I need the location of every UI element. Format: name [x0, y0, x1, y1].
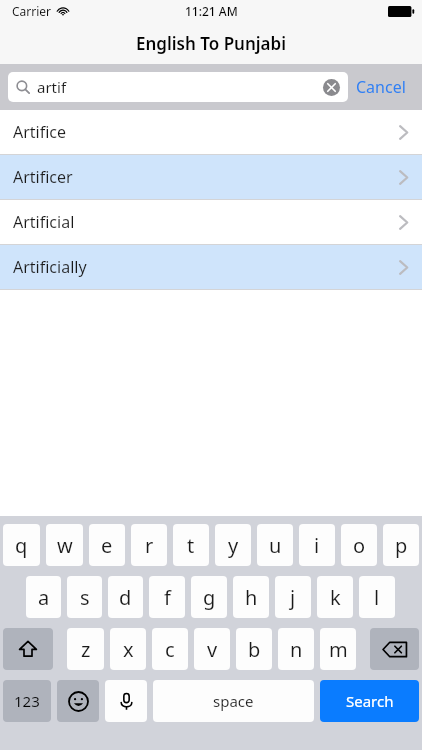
button[interactable]: u	[257, 524, 293, 566]
button[interactable]: Artificial	[0, 200, 422, 244]
staticText: Artificer	[13, 166, 73, 188]
button[interactable]: Search	[320, 680, 419, 722]
staticText: p	[395, 532, 408, 559]
staticText: s	[80, 584, 90, 611]
button[interactable]: 123	[3, 680, 51, 722]
staticText: m	[329, 636, 348, 663]
button[interactable]: Cancel	[348, 72, 414, 102]
button[interactable]: k	[317, 576, 353, 618]
button[interactable]: j	[275, 576, 311, 618]
button[interactable]: n	[278, 628, 314, 670]
button[interactable]: c	[152, 628, 188, 670]
staticText: b	[248, 636, 261, 663]
button[interactable]: m	[320, 628, 356, 670]
staticText: Artificial	[13, 211, 75, 233]
staticText: z	[81, 636, 91, 663]
staticText: e	[101, 532, 113, 559]
button[interactable]: z	[67, 628, 104, 670]
staticText: Search	[346, 691, 394, 711]
button[interactable]: Shift	[3, 628, 53, 670]
button[interactable]: Backspace	[370, 628, 419, 670]
button[interactable]: r	[131, 524, 167, 566]
button[interactable]: t	[173, 524, 209, 566]
staticText: c	[165, 636, 175, 663]
button[interactable]: v	[194, 628, 230, 670]
button[interactable]: o	[341, 524, 377, 566]
button[interactable]: s	[67, 576, 102, 618]
button[interactable]: Artifice	[0, 110, 422, 154]
staticText: o	[353, 532, 366, 559]
staticText: d	[119, 584, 132, 611]
button[interactable]: b	[236, 628, 272, 670]
staticText: English To Punjabi	[136, 32, 286, 55]
staticText: f	[164, 584, 171, 611]
button[interactable]: h	[233, 576, 269, 618]
staticText: artif	[37, 77, 67, 97]
staticText: i	[314, 532, 320, 559]
staticText: q	[15, 532, 28, 559]
staticText: Carrier	[12, 3, 52, 19]
staticText: a	[38, 584, 50, 611]
button[interactable]: Dictate	[105, 680, 147, 722]
staticText: r	[145, 532, 154, 559]
staticText: t	[187, 532, 195, 559]
button[interactable]: l	[359, 576, 395, 618]
staticText: Artifice	[13, 121, 67, 143]
staticText: u	[269, 532, 282, 559]
staticText: g	[203, 584, 216, 611]
button[interactable]: q	[3, 524, 40, 566]
staticText: n	[290, 636, 303, 663]
button[interactable]: y	[215, 524, 251, 566]
staticText: 11:21 AM	[185, 3, 238, 19]
staticText: v	[207, 636, 218, 663]
button[interactable]: d	[108, 576, 143, 618]
button[interactable]: g	[191, 576, 227, 618]
button[interactable]: space	[153, 680, 314, 722]
button[interactable]: a	[26, 576, 61, 618]
button[interactable]: f	[149, 576, 185, 618]
staticText: k	[330, 584, 341, 611]
button[interactable]: Artificer	[0, 155, 422, 199]
button[interactable]: w	[46, 524, 83, 566]
button[interactable]: Clear text	[323, 79, 340, 96]
staticText: l	[374, 584, 380, 611]
staticText: w	[57, 532, 73, 559]
staticText: 123	[14, 691, 40, 711]
button[interactable]: artif	[8, 72, 348, 102]
staticText: Artificially	[13, 256, 87, 278]
button[interactable]: Emoji	[57, 680, 99, 722]
staticText: h	[245, 584, 258, 611]
staticText: Cancel	[356, 76, 406, 98]
button[interactable]: Artificially	[0, 245, 422, 289]
staticText: y	[228, 532, 239, 559]
button[interactable]: e	[89, 524, 125, 566]
staticText: j	[290, 584, 296, 611]
button[interactable]: p	[383, 524, 419, 566]
button[interactable]: i	[299, 524, 335, 566]
button[interactable]: x	[110, 628, 146, 670]
staticText: x	[123, 636, 134, 663]
staticText: space	[213, 691, 254, 711]
